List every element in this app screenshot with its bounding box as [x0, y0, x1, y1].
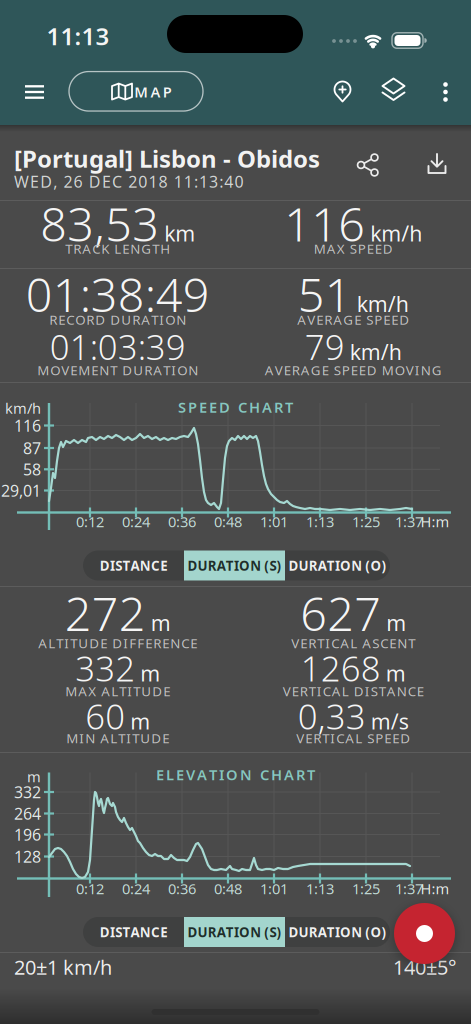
staticText: 1268: [301, 645, 381, 691]
staticText: km: [164, 219, 195, 247]
staticText: E: [392, 729, 399, 747]
staticText: A: [100, 729, 109, 747]
staticText: T: [327, 557, 335, 574]
button[interactable]: Share: [346, 143, 390, 187]
staticText: m: [140, 659, 160, 687]
staticText: T: [56, 634, 63, 652]
button[interactable]: Save track: [415, 143, 459, 187]
staticText: N: [140, 923, 151, 941]
staticText: V: [283, 682, 291, 700]
staticText: ): [381, 557, 386, 574]
staticText: R: [144, 361, 152, 379]
staticText: A: [78, 682, 87, 700]
staticText: P: [163, 82, 172, 101]
button[interactable]: D: [184, 917, 285, 947]
staticText: (: [264, 557, 269, 574]
staticText: H:m: [420, 879, 449, 898]
staticText: H: [271, 765, 282, 784]
button[interactable]: D: [184, 550, 285, 580]
staticText: 4: [224, 171, 233, 192]
staticText: E: [176, 765, 184, 784]
staticText: E: [160, 557, 167, 574]
staticText: I: [330, 729, 335, 747]
staticText: E: [162, 634, 169, 652]
staticText: L: [166, 765, 174, 784]
button[interactable]: More options: [423, 70, 467, 114]
staticText: 0: [138, 171, 147, 192]
staticText: A: [333, 311, 342, 328]
staticText: E: [391, 311, 398, 328]
staticText: D: [399, 311, 409, 328]
button[interactable]: Add place: [320, 70, 364, 114]
staticText: R: [274, 397, 283, 417]
staticText: O: [165, 311, 175, 328]
staticText: D: [152, 682, 162, 700]
staticText: T: [118, 729, 125, 747]
staticText: R: [208, 557, 217, 574]
staticText: I: [110, 923, 115, 941]
staticText: N: [99, 361, 109, 379]
staticText: T: [151, 311, 158, 328]
staticText: 0:12: [76, 879, 104, 898]
staticText: L: [110, 729, 117, 747]
staticText: P: [375, 729, 383, 747]
staticText: 0:36: [168, 879, 196, 898]
staticText: A: [387, 682, 396, 700]
staticText: U: [299, 923, 309, 941]
staticText: D: [288, 557, 298, 574]
staticText: [123, 171, 127, 192]
staticText: E: [162, 729, 169, 747]
button[interactable]: M: [69, 71, 203, 111]
staticText: T: [163, 361, 170, 379]
staticText: E: [284, 361, 291, 379]
staticText: 627: [300, 582, 381, 644]
staticText: E: [383, 311, 390, 328]
staticText: A: [345, 729, 354, 747]
button[interactable]: Map layers: [371, 70, 415, 114]
button[interactable]: Menu: [12, 70, 56, 114]
staticText: 0,33: [298, 693, 366, 739]
staticText: A: [197, 765, 207, 784]
staticText: C: [151, 923, 160, 941]
button[interactable]: D: [285, 917, 390, 947]
button[interactable]: D: [285, 550, 390, 580]
staticText: 0:24: [122, 512, 150, 531]
button[interactable]: Record: [394, 903, 455, 964]
staticText: :: [219, 171, 223, 192]
staticText: D: [219, 397, 230, 417]
staticText: 1:25: [352, 512, 380, 531]
staticText: V: [406, 361, 414, 379]
staticText: A: [217, 557, 226, 574]
staticText: N: [140, 557, 151, 574]
staticText: A: [265, 361, 274, 379]
staticText: I: [79, 729, 84, 747]
staticText: E: [417, 682, 424, 700]
staticText: S: [372, 634, 379, 652]
staticText: S: [367, 729, 374, 747]
staticText: O: [75, 311, 85, 328]
staticText: E: [100, 634, 107, 652]
staticText: ,: [53, 171, 57, 192]
button[interactable]: D: [83, 550, 184, 580]
staticText: T: [285, 397, 293, 417]
staticText: 2: [63, 171, 72, 192]
staticText: 116: [14, 415, 41, 436]
staticText: E: [145, 634, 152, 652]
staticText: E: [91, 361, 98, 379]
staticText: 1: [199, 171, 208, 192]
staticText: V: [186, 765, 195, 784]
staticText: O: [340, 557, 351, 574]
staticText: U: [299, 557, 309, 574]
staticText: I: [171, 361, 176, 379]
staticText: [110, 240, 113, 257]
staticText: A: [284, 765, 294, 784]
button[interactable]: D: [83, 917, 184, 947]
staticText: V: [307, 311, 315, 328]
staticText: O: [370, 923, 381, 941]
staticText: H: [160, 240, 170, 257]
staticText: E: [300, 634, 307, 652]
